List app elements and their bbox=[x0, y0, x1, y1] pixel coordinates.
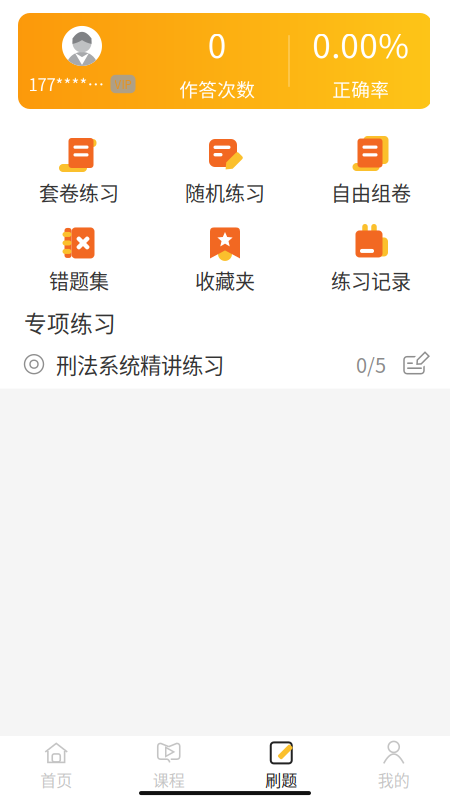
button[interactable]: 首页 bbox=[0, 741, 112, 791]
button[interactable]: 我的 bbox=[337, 741, 450, 791]
staticText: 收藏夹 bbox=[195, 266, 255, 295]
staticText: 首页 bbox=[40, 768, 72, 791]
staticText: 0/5 bbox=[356, 350, 386, 379]
staticText: 0 bbox=[208, 20, 227, 68]
staticText: 刷题 bbox=[265, 768, 297, 791]
button[interactable]: 自由组卷 bbox=[298, 136, 444, 207]
staticText: 0.00% bbox=[312, 20, 409, 68]
button[interactable]: 177****… bbox=[0, 0, 450, 109]
staticText: 套卷练习 bbox=[39, 178, 119, 207]
staticText: 正确率 bbox=[332, 75, 389, 102]
button[interactable]: 练习记录 bbox=[298, 224, 444, 295]
staticText: 177****… bbox=[28, 72, 104, 96]
button[interactable]: 错题集 bbox=[6, 224, 152, 295]
button[interactable]: 刷题 bbox=[225, 741, 337, 791]
staticText: VIP bbox=[114, 76, 131, 92]
staticText: 专项练习 bbox=[24, 306, 116, 339]
staticText: 错题集 bbox=[49, 266, 109, 295]
staticText: 刑法系统精讲练习 bbox=[56, 349, 224, 380]
staticText: 练习记录 bbox=[331, 266, 411, 295]
button[interactable]: 课程 bbox=[112, 741, 225, 791]
staticText: 我的 bbox=[378, 768, 410, 791]
staticText: 随机练习 bbox=[185, 178, 265, 207]
button[interactable]: 套卷练习 bbox=[6, 136, 152, 207]
staticText: 作答次数 bbox=[179, 75, 255, 102]
button[interactable]: 刑法系统精讲练习 bbox=[0, 339, 450, 389]
button[interactable]: 收藏夹 bbox=[152, 224, 298, 295]
staticText: 课程 bbox=[153, 768, 185, 791]
button[interactable]: 随机练习 bbox=[152, 136, 298, 207]
staticText: 自由组卷 bbox=[331, 178, 411, 207]
